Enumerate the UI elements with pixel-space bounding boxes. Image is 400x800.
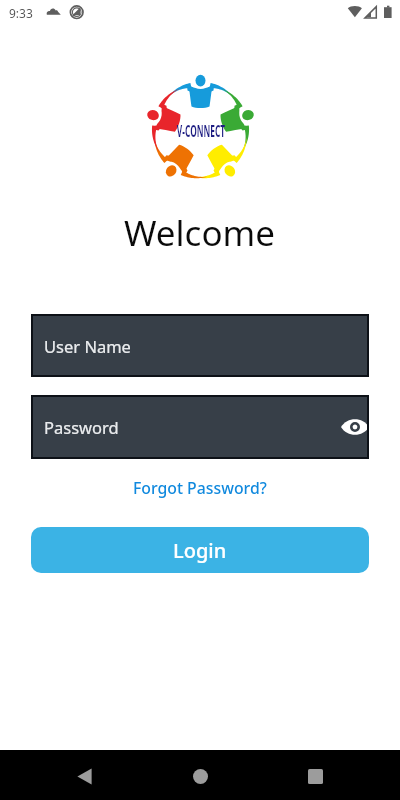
button[interactable]: Recent apps — [295, 756, 335, 796]
staticText: User Name — [44, 335, 131, 357]
staticText: V-CONNECT — [176, 120, 226, 138]
button[interactable]: Password — [31, 395, 369, 459]
button[interactable]: Forgot Password? — [129, 474, 271, 502]
staticText: Password — [44, 416, 119, 438]
button[interactable]: User Name — [31, 314, 369, 377]
button[interactable]: Show password — [336, 408, 369, 446]
button[interactable]: Home — [180, 756, 220, 796]
staticText: Forgot Password? — [133, 477, 267, 499]
staticText: 9:33 — [9, 5, 33, 21]
staticText: Login — [173, 537, 227, 564]
button[interactable]: Login — [31, 527, 369, 573]
button[interactable]: Back — [64, 756, 104, 796]
staticText: Welcome — [124, 209, 276, 257]
